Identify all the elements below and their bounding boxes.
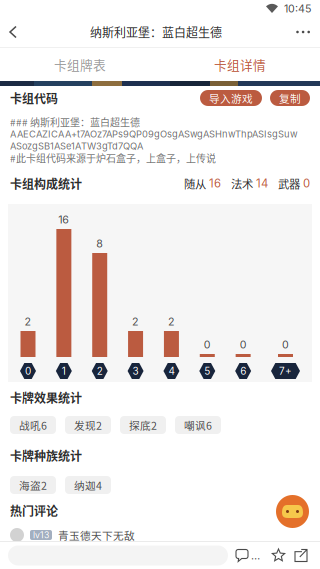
staticText: lv13 [33, 530, 49, 540]
staticText: 3 [133, 365, 139, 377]
staticText: 5 [204, 365, 210, 377]
staticText: 0 [300, 177, 310, 190]
staticText: 1 [62, 365, 66, 377]
staticText: 复制 [279, 90, 301, 106]
staticText: 海盗2 [19, 477, 47, 493]
staticText: 青玉德天下无敌 [58, 527, 135, 543]
staticText: ### 纳斯利亚堡：蓝白超生德 [10, 115, 140, 129]
staticText: 纳斯利亚堡：蓝白超生德 [90, 23, 222, 41]
staticText: 6 [240, 365, 246, 377]
button[interactable]: Comments [236, 542, 266, 569]
staticText: #此卡组代码来源于炉石盒子，上盒子，上传说 [10, 151, 216, 165]
button[interactable]: 复制 [270, 90, 310, 106]
staticText: 卡牌效果统计 [10, 389, 82, 406]
button[interactable]: More [282, 17, 320, 47]
staticText: 2 [97, 365, 103, 377]
button[interactable]: Back [0, 17, 30, 47]
staticText: 0 [240, 338, 247, 351]
staticText: 卡组牌表 [54, 55, 106, 74]
staticText: 嘲讽6 [184, 417, 212, 433]
staticText: 发现2 [74, 417, 102, 433]
button[interactable]: 导入游戏 [200, 90, 262, 106]
staticText: 2 [24, 315, 31, 328]
staticText: 2 [168, 315, 175, 328]
staticText: 0 [282, 338, 289, 351]
button[interactable]: 发现2 [65, 416, 111, 434]
button[interactable]: Games [276, 495, 309, 528]
staticText: 0 [204, 338, 211, 351]
staticText: 16 [206, 177, 221, 190]
staticText: 战吼6 [19, 417, 47, 433]
button[interactable]: 探底2 [120, 416, 166, 434]
staticText: 武器 [278, 175, 300, 192]
staticText: 14 [253, 177, 268, 190]
staticText: 7+ [279, 365, 292, 377]
staticText: 热门评论 [10, 502, 58, 519]
staticText: 探底2 [129, 417, 157, 433]
button[interactable]: 卡组牌表 [0, 48, 160, 81]
staticText: 法术 [231, 175, 253, 192]
button[interactable]: 纳迦4 [65, 476, 111, 494]
staticText: 10:45 [284, 2, 311, 15]
staticText: 卡组详情 [214, 55, 266, 74]
button[interactable]: Favorite [272, 542, 285, 569]
staticText: 纳迦4 [74, 477, 102, 493]
staticText: ASozgSB1ASe1ATW3gTd7QQA [10, 140, 143, 152]
staticText: 4 [168, 365, 174, 377]
staticText: 卡组构成统计 [10, 175, 82, 192]
staticText: 2 [132, 315, 139, 328]
button[interactable]: 嘲讽6 [175, 416, 221, 434]
button[interactable]: 海盗2 [10, 476, 56, 494]
staticText: AAECAZICAA+t7AOz7APs9QP09gOsgASwgASHnwTh… [10, 128, 298, 140]
staticText: 卡牌种族统计 [10, 447, 82, 464]
staticText: 随从 [184, 175, 206, 192]
staticText: 16 [58, 213, 69, 226]
staticText: 卡组代码 [10, 89, 58, 107]
button[interactable]: Share [295, 542, 307, 569]
button[interactable]: 战吼6 [10, 416, 56, 434]
staticText: 导入游戏 [209, 90, 253, 106]
staticText: 212 [251, 549, 266, 562]
staticText: 0 [25, 365, 31, 377]
staticText: 8 [96, 237, 103, 250]
button[interactable]: 卡组详情 [160, 48, 320, 81]
